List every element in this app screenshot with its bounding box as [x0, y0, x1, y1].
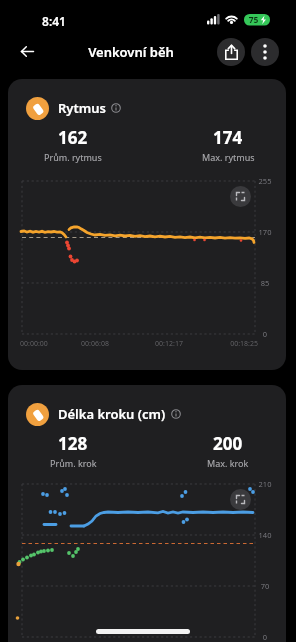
- staticText: 162: [58, 126, 88, 149]
- staticText: 70: [253, 581, 277, 591]
- staticText: 00:12:17: [141, 339, 197, 349]
- staticText: 255: [253, 176, 277, 186]
- staticText: 00:06:08: [67, 339, 123, 349]
- button[interactable]: Rytmus: [8, 79, 286, 370]
- staticText: Rytmus: [58, 99, 106, 117]
- button[interactable]: [13, 37, 42, 66]
- staticText: 200: [213, 432, 243, 455]
- button[interactable]: [230, 489, 251, 510]
- staticText: 85: [253, 278, 277, 288]
- staticText: 00:18:25: [202, 339, 258, 349]
- button[interactable]: Délka kroku (cm): [8, 385, 286, 642]
- staticText: Max. krok: [207, 457, 249, 469]
- staticText: 00:00:00: [20, 339, 76, 349]
- staticText: Prům. rytmus: [44, 151, 102, 163]
- staticText: 0: [253, 329, 277, 339]
- staticText: 75: [246, 14, 261, 26]
- staticText: Max. rytmus: [202, 151, 255, 163]
- button[interactable]: [230, 186, 251, 207]
- staticText: Délka kroku (cm): [58, 405, 166, 423]
- staticText: 140: [253, 530, 277, 540]
- staticText: 210: [253, 479, 277, 489]
- staticText: Prům. krok: [50, 457, 97, 469]
- button[interactable]: [217, 38, 245, 66]
- staticText: 174: [213, 126, 243, 149]
- staticText: 170: [253, 227, 277, 237]
- staticText: 0: [253, 632, 277, 642]
- button[interactable]: [251, 38, 279, 66]
- button[interactable]: Délka kroku (cm): [26, 402, 181, 426]
- staticText: Venkovní běh: [71, 43, 191, 61]
- button[interactable]: Rytmus: [26, 96, 121, 120]
- staticText: 8:41: [28, 13, 80, 29]
- staticText: 128: [58, 432, 88, 455]
